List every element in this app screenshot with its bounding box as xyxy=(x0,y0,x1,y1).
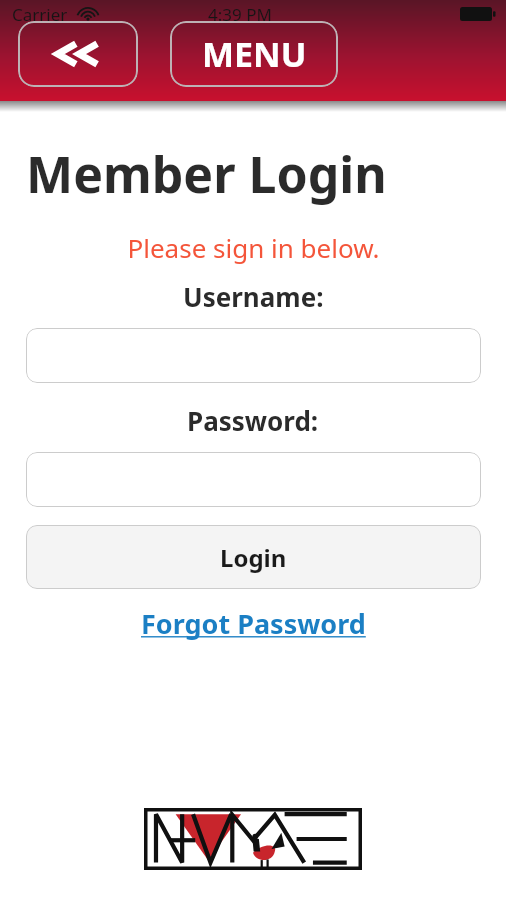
button[interactable] xyxy=(26,452,481,507)
staticText: Login xyxy=(220,541,287,574)
staticText: Member Login xyxy=(26,140,387,208)
staticText: Carrier xyxy=(12,3,68,26)
staticText: Forgot Password xyxy=(141,605,366,642)
button[interactable]: Login xyxy=(26,525,481,589)
staticText: 4:39 PM xyxy=(208,3,272,26)
staticText: MENU xyxy=(202,31,307,77)
staticText: Username: xyxy=(183,279,324,314)
button[interactable]: Forgot Password xyxy=(135,603,372,644)
button[interactable]: MENU xyxy=(170,21,338,87)
button[interactable] xyxy=(26,328,481,383)
staticText: Password: xyxy=(187,403,319,438)
button[interactable]: Back xyxy=(18,21,138,87)
staticText: Please sign in below. xyxy=(127,230,380,265)
